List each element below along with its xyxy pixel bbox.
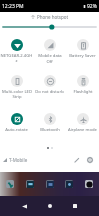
button[interactable]: Airplane mode [66,113,99,133]
button[interactable]: Do not disturb [33,75,66,95]
staticText: Off [46,59,53,65]
staticText: Battery Saver [69,53,96,59]
button[interactable]: Back [12,196,37,216]
button[interactable]: Multi-color LED Strip [0,75,33,99]
staticText: Bluetooth [40,127,60,133]
button[interactable]: NETGEAR-2.4GHz [0,39,33,63]
button[interactable]: Flashlight [66,75,99,95]
button[interactable]: Bluetooth [33,113,66,133]
button[interactable]: Settings [84,154,96,166]
staticText: 92% [87,3,97,10]
button[interactable]: App [65,180,73,188]
button[interactable]: Auto-rotate [0,113,33,133]
staticText: Mobile data [38,53,62,59]
button[interactable]: Battery Saver [66,39,99,59]
button[interactable]: App [85,180,93,188]
button[interactable]: Edit tiles [71,154,83,166]
button[interactable]: App [46,180,54,188]
staticText: 12:23 PM [2,3,24,10]
staticText: NETGEAR-2.4GHz [0,53,33,63]
staticText: Multi-color LED Strip [2,89,32,99]
staticText: Airplane mode [68,127,97,133]
staticText: Phone hotspot [37,14,69,20]
staticText: T-Mobile [9,157,28,163]
staticText: Flashlight [73,89,93,95]
staticText: Auto-rotate [5,127,28,133]
staticText: Do not disturb [35,89,64,95]
button[interactable]: App [6,180,14,188]
button[interactable]: Mobile data [33,39,66,65]
button[interactable]: App [26,180,34,188]
button[interactable]: Recents [62,196,87,216]
button[interactable]: Home [37,196,62,216]
